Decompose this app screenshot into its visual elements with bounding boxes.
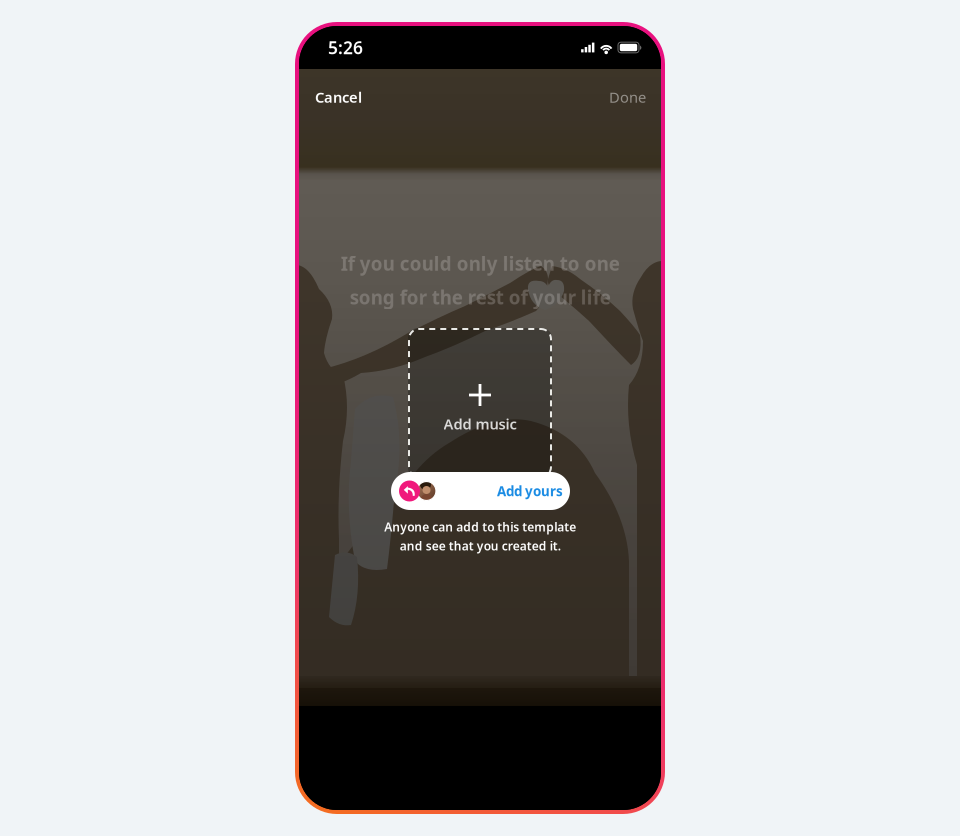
button[interactable]: Cancel bbox=[299, 71, 378, 123]
button[interactable]: Done bbox=[594, 71, 661, 123]
button[interactable]: Add music bbox=[408, 328, 552, 478]
staticText: Add music bbox=[443, 414, 516, 433]
staticText: If you could only listen to one song for… bbox=[340, 251, 619, 310]
button[interactable]: Add yours bbox=[391, 472, 570, 510]
staticText: Add yours bbox=[497, 482, 563, 500]
staticText: 5:26 bbox=[328, 36, 363, 59]
staticText: Done bbox=[609, 87, 646, 107]
staticText: Anyone can add to this template and see … bbox=[384, 519, 576, 554]
staticText: Cancel bbox=[315, 87, 362, 107]
